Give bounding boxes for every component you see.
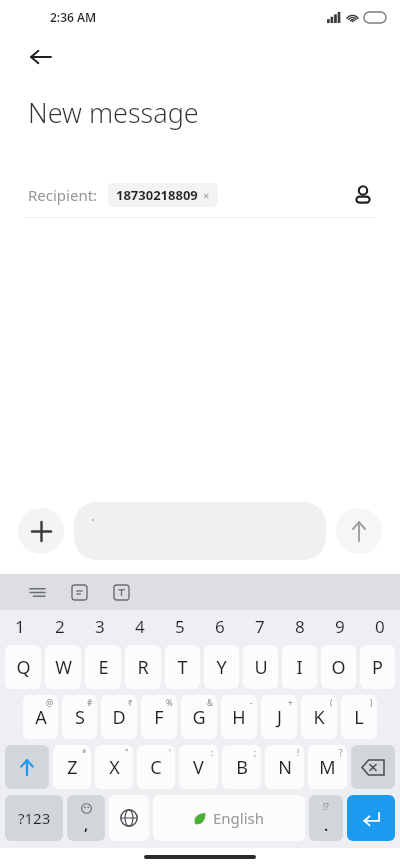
staticText: ' <box>169 747 171 758</box>
button[interactable]: Y <box>204 645 239 689</box>
staticText: K <box>313 705 325 730</box>
staticText: Z <box>67 755 78 780</box>
button[interactable]: Text options <box>106 577 136 607</box>
staticText: W <box>55 655 72 680</box>
button[interactable]: W <box>45 645 81 689</box>
staticText: F <box>154 705 164 730</box>
staticText: 9 <box>335 615 345 638</box>
button[interactable]: 3 <box>80 610 120 642</box>
staticText: ! <box>297 747 300 758</box>
staticText: Q <box>16 655 31 680</box>
button[interactable]: S <box>62 695 97 739</box>
staticText: . <box>324 815 329 835</box>
button[interactable]: 7 <box>240 610 280 642</box>
button[interactable]: F <box>141 695 177 739</box>
button[interactable]: P <box>360 645 395 689</box>
button[interactable]: Back <box>20 36 62 78</box>
staticText: 18730218809 <box>116 186 198 204</box>
button[interactable]: 18730218809 <box>108 183 218 207</box>
button[interactable]: T <box>165 645 200 689</box>
staticText: 6 <box>215 615 225 638</box>
staticText: " <box>125 747 129 758</box>
button[interactable]: Comma and emoji <box>67 795 105 841</box>
staticText: @ <box>46 697 54 708</box>
staticText: O <box>331 655 346 680</box>
staticText: ₹ <box>128 697 133 708</box>
button[interactable]: Clipboard <box>64 577 94 607</box>
staticText: A <box>35 705 47 730</box>
staticText: Y <box>216 655 227 680</box>
button[interactable]: 8 <box>280 610 320 642</box>
staticText: ?123 <box>18 808 51 828</box>
button[interactable]: Period <box>309 795 343 841</box>
staticText: I <box>296 655 303 680</box>
staticText: 2 <box>55 615 65 638</box>
staticText: H <box>232 705 246 730</box>
button[interactable]: 5 <box>160 610 200 642</box>
button[interactable]: Change language <box>109 795 149 841</box>
button[interactable]: Z <box>53 745 91 789</box>
staticText: # <box>87 697 93 708</box>
staticText: S <box>75 705 85 730</box>
button[interactable]: J <box>261 695 297 739</box>
staticText: P <box>372 655 383 680</box>
staticText: & <box>207 697 213 708</box>
staticText: X <box>109 755 120 780</box>
button[interactable]: K <box>301 695 337 739</box>
button[interactable]: O <box>321 645 356 689</box>
staticText: 0 <box>375 615 385 638</box>
staticText: + <box>288 697 293 708</box>
button[interactable]: A <box>23 695 58 739</box>
button[interactable]: M <box>308 745 347 789</box>
staticText: 7 <box>255 615 265 638</box>
button[interactable]: H <box>221 695 257 739</box>
staticText: R <box>137 655 149 680</box>
button[interactable]: I <box>282 645 317 689</box>
button[interactable]: Contacts <box>346 178 380 212</box>
button[interactable]: B <box>222 745 261 789</box>
staticText: C <box>150 755 162 780</box>
staticText: 5 <box>175 615 185 638</box>
staticText: M <box>319 755 336 780</box>
staticText: % <box>166 697 173 708</box>
staticText: New message <box>28 94 199 131</box>
button[interactable]: U <box>243 645 278 689</box>
staticText: ( <box>330 697 333 708</box>
button[interactable]: V <box>179 745 218 789</box>
button[interactable]: Q <box>5 645 41 689</box>
button[interactable]: Menu <box>22 577 52 607</box>
button[interactable]: R <box>125 645 161 689</box>
button[interactable]: Shift <box>5 745 49 789</box>
button[interactable]: ?123 <box>5 795 63 841</box>
button[interactable]: X <box>95 745 133 789</box>
button[interactable]: English <box>153 795 305 841</box>
staticText: 1 <box>15 615 25 638</box>
staticText: B <box>236 755 248 780</box>
button[interactable]: C <box>137 745 175 789</box>
button[interactable]: 1 <box>0 610 40 642</box>
staticText: , <box>84 814 89 834</box>
button[interactable]: Send <box>336 508 382 554</box>
staticText: ; <box>254 747 257 758</box>
button[interactable]: Enter <box>347 795 395 841</box>
staticText: * <box>82 747 87 758</box>
button[interactable]: N <box>265 745 304 789</box>
staticText: L <box>354 705 364 730</box>
button[interactable]: 2 <box>40 610 80 642</box>
staticText: U <box>254 655 268 680</box>
button[interactable]: Backspace <box>351 745 395 789</box>
button[interactable]: Add attachment <box>18 508 64 554</box>
button[interactable]: 9 <box>320 610 360 642</box>
button[interactable]: G <box>181 695 217 739</box>
button[interactable]: 6 <box>200 610 240 642</box>
button[interactable]: 0 <box>360 610 400 642</box>
button[interactable]: L <box>341 695 377 739</box>
button[interactable]: 4 <box>120 610 160 642</box>
button[interactable]: D <box>101 695 137 739</box>
button[interactable]: E <box>85 645 121 689</box>
staticText: J <box>277 705 282 730</box>
staticText: V <box>193 755 204 780</box>
staticText: 3 <box>95 615 105 638</box>
staticText: : <box>211 747 214 758</box>
